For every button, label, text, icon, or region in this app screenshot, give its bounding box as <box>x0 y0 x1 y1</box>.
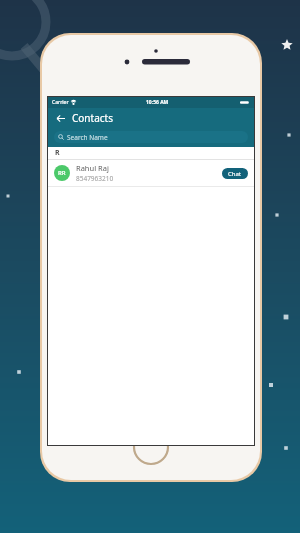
staticText: 8547963210 <box>76 174 114 183</box>
staticText: RR <box>58 169 66 177</box>
staticText: Chat <box>228 170 242 178</box>
staticText: 10:56 AM <box>146 99 169 106</box>
button[interactable]: Back <box>53 111 67 125</box>
button[interactable]: Chat <box>222 168 248 179</box>
staticText: Search Name <box>67 133 108 142</box>
button[interactable]: RR <box>48 160 254 186</box>
staticText: Rahul Raj <box>76 163 109 173</box>
staticText: Carrier <box>52 99 69 106</box>
staticText: R <box>55 148 60 158</box>
staticText: Contacts <box>72 111 113 125</box>
button[interactable]: Search Name <box>54 131 248 143</box>
